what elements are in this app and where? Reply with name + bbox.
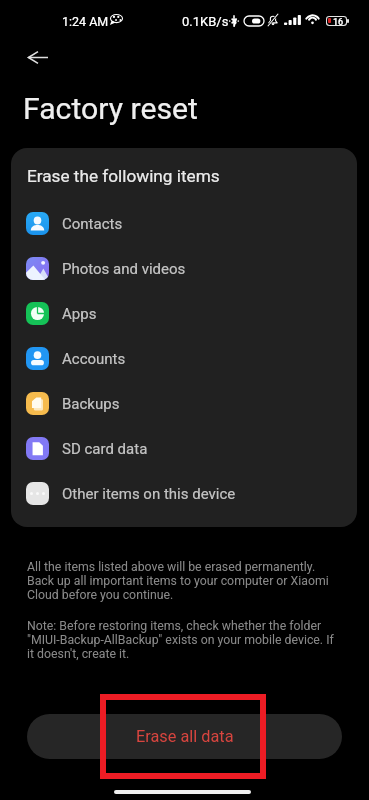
staticText: Other items on this device bbox=[62, 485, 236, 503]
button[interactable]: Apps bbox=[26, 291, 357, 336]
button[interactable]: Erase all data bbox=[27, 714, 342, 759]
button[interactable]: Other items on this device bbox=[26, 471, 357, 516]
staticText: Erase all data bbox=[136, 727, 234, 746]
staticText: Accounts bbox=[62, 350, 126, 368]
button[interactable]: SD card data bbox=[26, 426, 357, 471]
button[interactable]: Contacts bbox=[26, 201, 357, 246]
staticText: Note: Before restoring items, check whet… bbox=[27, 619, 339, 661]
staticText: Contacts bbox=[62, 215, 123, 233]
button[interactable]: Accounts bbox=[26, 336, 357, 381]
staticText: Erase the following items bbox=[27, 166, 220, 186]
staticText: Apps bbox=[62, 305, 97, 323]
button[interactable]: Photos and videos bbox=[26, 246, 357, 291]
staticText: SD card data bbox=[62, 440, 148, 458]
staticText: 1:24 AM bbox=[62, 14, 109, 29]
button[interactable]: Backups bbox=[26, 381, 357, 426]
staticText: Factory reset bbox=[23, 91, 198, 126]
staticText: 0.1KB/s bbox=[182, 14, 229, 29]
staticText: All the items listed above will be erase… bbox=[27, 560, 342, 602]
button[interactable]: Back bbox=[15, 35, 60, 80]
staticText: Photos and videos bbox=[62, 260, 186, 278]
staticText: Backups bbox=[62, 395, 120, 413]
staticText: 16 bbox=[333, 17, 344, 25]
